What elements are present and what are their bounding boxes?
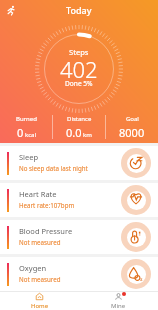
staticText: Distance [67,115,92,123]
staticText: No sleep data last night [19,164,88,172]
staticText: Oxygen [19,263,47,273]
staticText: Steps [69,47,89,57]
staticText: Goal [126,115,139,123]
button[interactable]: Activity [4,3,18,17]
staticText: Blood Pressure [19,226,73,236]
staticText: km [83,131,92,139]
staticText: Sleep [19,152,39,162]
staticText: Not measured [19,238,61,246]
staticText: Done 5% [65,79,93,88]
staticText: Not measured [19,275,61,283]
staticText: kcal [25,131,36,139]
button[interactable]: Home [0,292,79,310]
staticText: 402 [60,54,98,84]
button[interactable]: Heart Rate [0,183,158,217]
staticText: 0.0 [66,125,82,140]
staticText: Heart Rate [19,189,57,199]
staticText: Heart rate:107bpm [19,201,75,209]
staticText: Burned [16,115,37,123]
staticText: Mine [111,302,126,310]
button[interactable]: Sleep [0,146,158,180]
staticText: 8000 [119,125,145,140]
staticText: Home [31,302,49,310]
staticText: Today [66,4,92,16]
button[interactable]: Mine [79,292,158,310]
button[interactable]: Oxygen [0,257,158,291]
button[interactable]: Blood Pressure [0,220,158,254]
staticText: 0 [17,125,24,140]
